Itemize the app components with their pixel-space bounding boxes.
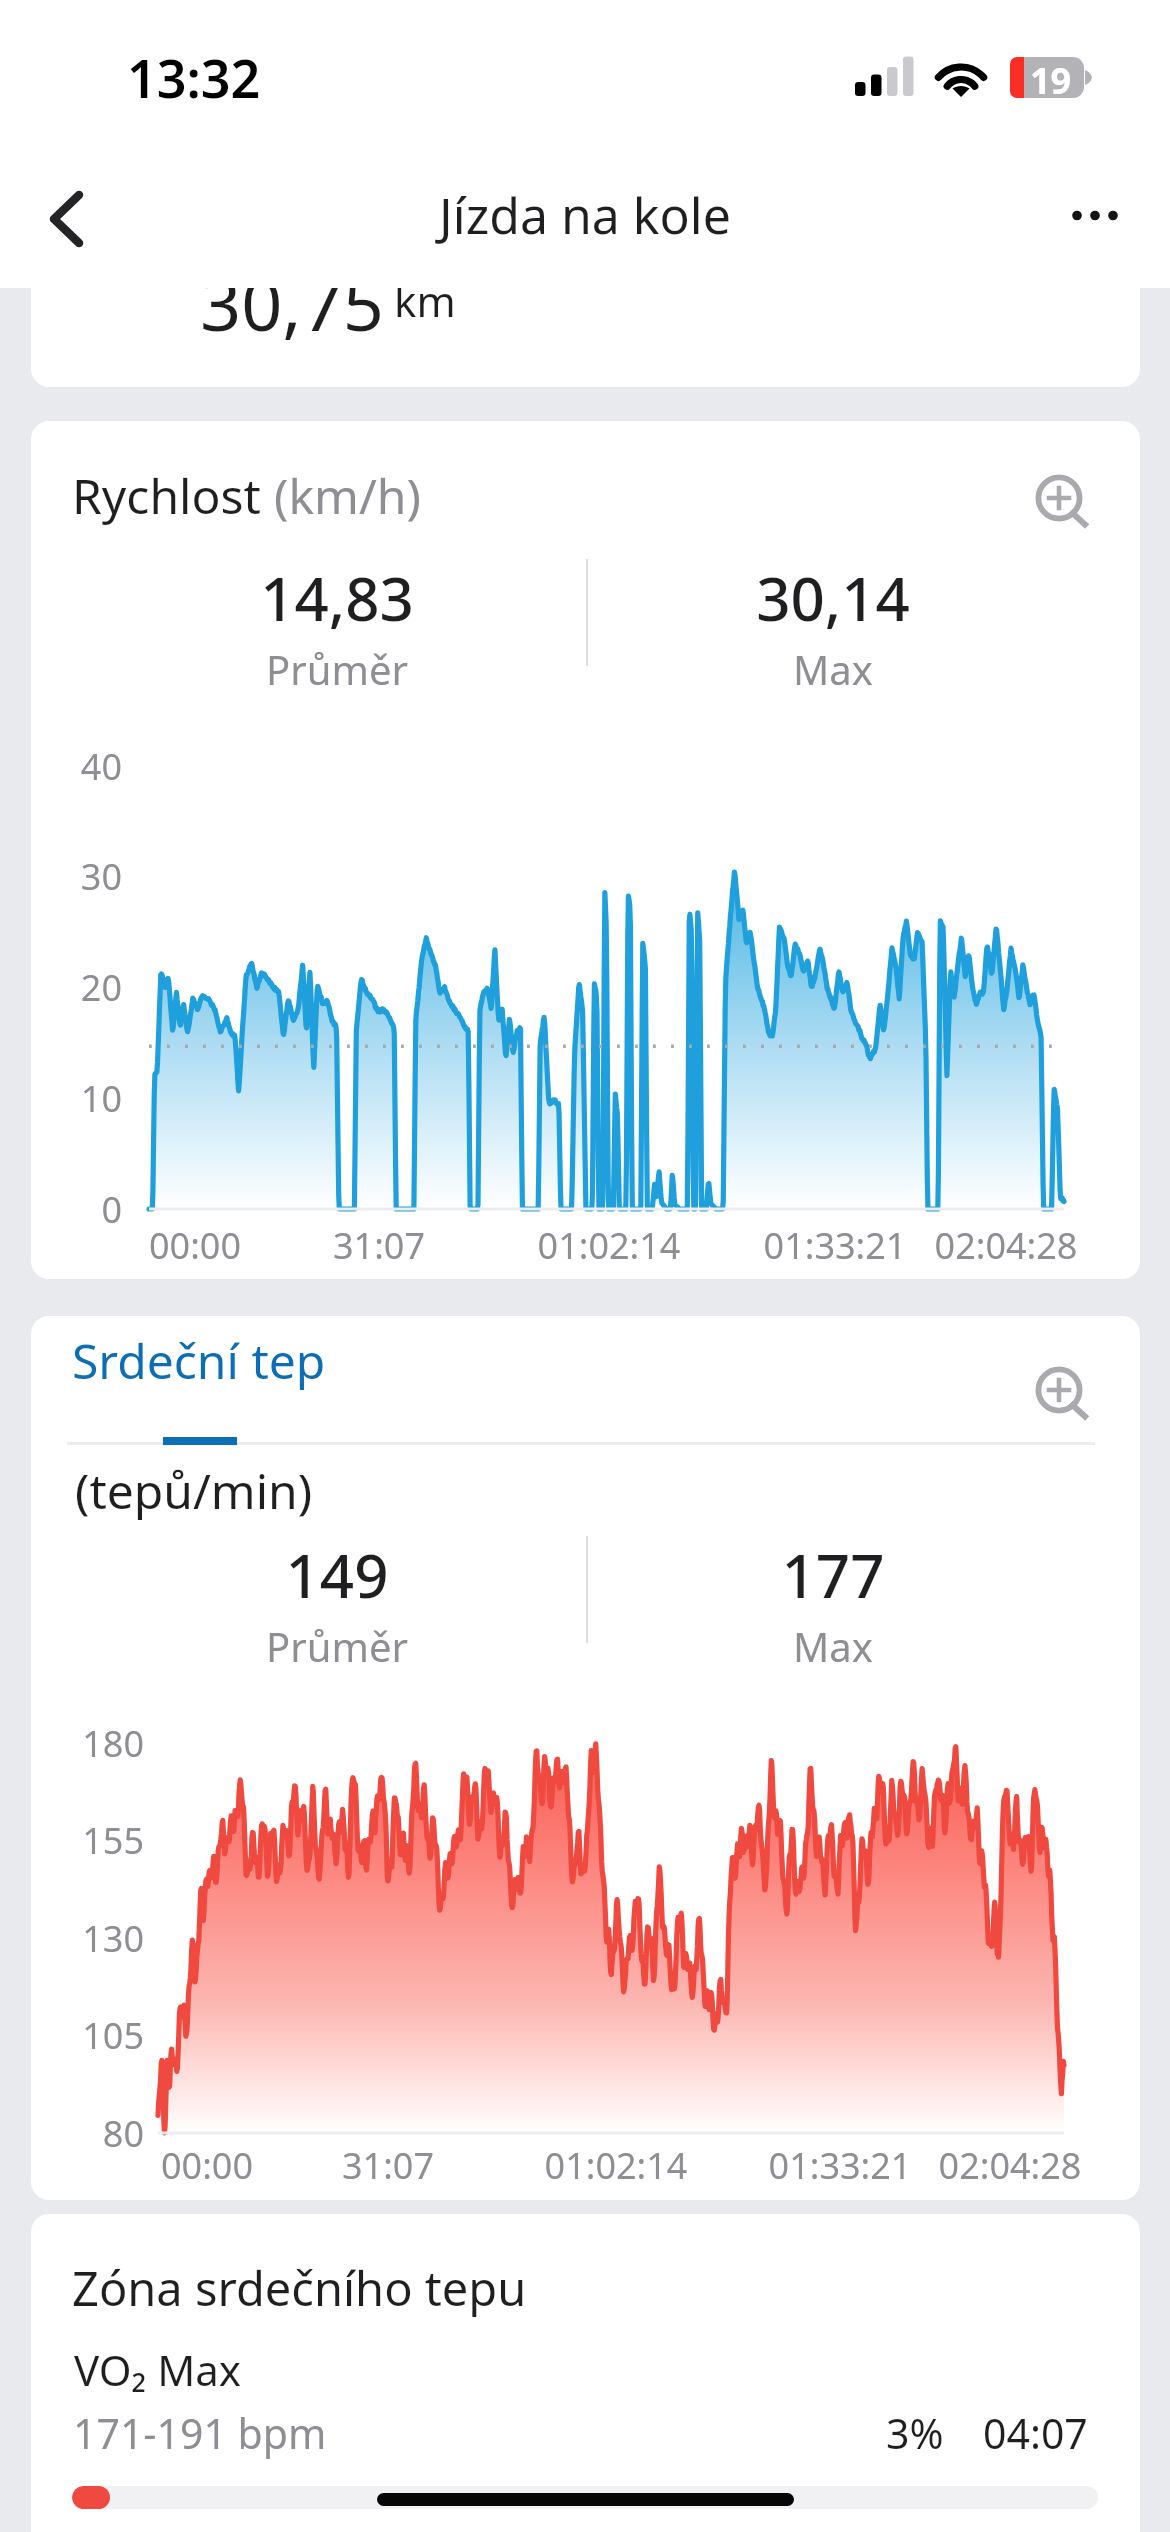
staticText: 30 bbox=[31, 852, 122, 901]
staticText: 19 bbox=[1030, 56, 1072, 97]
staticText: 31:07 bbox=[269, 1221, 489, 1270]
staticText: (km/h) bbox=[274, 463, 421, 528]
button[interactable]: Rychlost bbox=[31, 421, 1140, 1279]
button[interactable]: 30,75 bbox=[31, 288, 1140, 387]
staticText: 105 bbox=[31, 2011, 144, 2060]
staticText: 180 bbox=[31, 1719, 144, 1768]
staticText: 0 bbox=[31, 1185, 122, 1234]
staticText: Jízda na kole bbox=[0, 181, 1170, 249]
button[interactable]: Zoom in bbox=[1021, 1352, 1097, 1428]
staticText: 155 bbox=[31, 1816, 144, 1865]
staticText: 30,75 bbox=[200, 288, 385, 352]
staticText: 130 bbox=[31, 1914, 144, 1963]
staticText: 13:32 bbox=[127, 42, 261, 113]
staticText: 149 bbox=[137, 1534, 537, 1616]
staticText: 80 bbox=[31, 2109, 144, 2158]
staticText: 40 bbox=[31, 742, 122, 791]
staticText: 01:33:21 bbox=[725, 1221, 945, 1270]
staticText: Průměr bbox=[137, 642, 537, 696]
staticText: 02:04:28 bbox=[900, 2141, 1120, 2190]
staticText: Zóna srdečního tepu bbox=[72, 2256, 527, 2320]
staticText: (tepů/min) bbox=[75, 1458, 313, 1523]
staticText: 14,83 bbox=[137, 557, 537, 639]
staticText: 10 bbox=[31, 1074, 122, 1123]
staticText: Průměr bbox=[137, 1619, 537, 1673]
staticText: 177 bbox=[633, 1534, 1033, 1616]
staticText: 02:04:28 bbox=[896, 1221, 1116, 1270]
staticText: 30,14 bbox=[633, 557, 1033, 639]
button[interactable]: More options bbox=[1028, 172, 1116, 260]
staticText: Max bbox=[633, 642, 1033, 696]
staticText: km bbox=[394, 288, 456, 329]
staticText: Max bbox=[633, 1619, 1033, 1673]
button[interactable]: Srdeční tep bbox=[31, 1316, 1140, 2200]
staticText: 31:07 bbox=[278, 2141, 498, 2190]
button[interactable]: Back bbox=[20, 172, 108, 260]
staticText: 171-191 bpm bbox=[73, 2405, 327, 2461]
staticText: VO₂ Max bbox=[74, 2341, 242, 2398]
button[interactable]: Zoom in bbox=[1021, 460, 1097, 536]
staticText: Srdeční tep bbox=[72, 1328, 326, 1393]
staticText: 20 bbox=[31, 963, 122, 1012]
staticText: Rychlost bbox=[72, 463, 274, 528]
staticText: 3% bbox=[886, 2405, 944, 2461]
staticText: 01:33:21 bbox=[730, 2141, 950, 2190]
staticText: 00:00 bbox=[85, 1221, 305, 1270]
staticText: 01:02:14 bbox=[499, 1221, 719, 1270]
staticText: 01:02:14 bbox=[506, 2141, 726, 2190]
staticText: 00:00 bbox=[97, 2141, 317, 2190]
button[interactable]: Zóna srdečního tepu bbox=[31, 2214, 1140, 2532]
staticText: 04:07 bbox=[983, 2405, 1088, 2461]
